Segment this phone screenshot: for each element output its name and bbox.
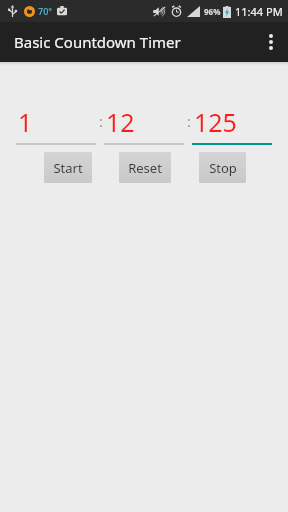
- button[interactable]: Stop: [199, 152, 246, 183]
- staticText: 125: [194, 105, 237, 139]
- staticText: 11:44 PM: [235, 4, 283, 19]
- staticText: Start: [53, 159, 83, 177]
- button[interactable]: 12: [104, 105, 184, 145]
- staticText: 12: [106, 105, 135, 139]
- staticText: :: [99, 111, 104, 131]
- button[interactable]: 125: [192, 105, 272, 145]
- staticText: 70°: [38, 5, 53, 17]
- button[interactable]: More options: [254, 22, 288, 62]
- button[interactable]: 1: [16, 105, 96, 145]
- staticText: 1: [18, 105, 33, 139]
- staticText: Reset: [128, 159, 162, 177]
- staticText: :: [187, 111, 192, 131]
- staticText: Stop: [209, 159, 237, 177]
- button[interactable]: Start: [44, 152, 92, 183]
- button[interactable]: Reset: [119, 152, 171, 183]
- staticText: Basic Countdown Timer: [14, 32, 181, 52]
- staticText: 96%: [204, 6, 221, 17]
